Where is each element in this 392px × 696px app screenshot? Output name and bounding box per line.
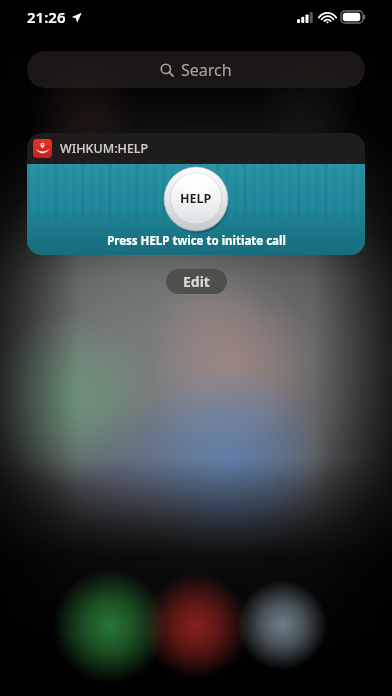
staticText: Press HELP twice to initiate call	[107, 233, 286, 249]
staticText: HELP	[180, 190, 212, 207]
button[interactable]: Edit	[166, 269, 227, 294]
button[interactable]: Search	[27, 51, 365, 88]
staticText: Search	[181, 59, 232, 81]
staticText: 21:26	[27, 7, 66, 27]
button[interactable]: WIHKUM:HELP	[27, 133, 365, 255]
staticText: Edit	[183, 272, 210, 291]
staticText: WIHKUM:HELP	[60, 140, 149, 157]
